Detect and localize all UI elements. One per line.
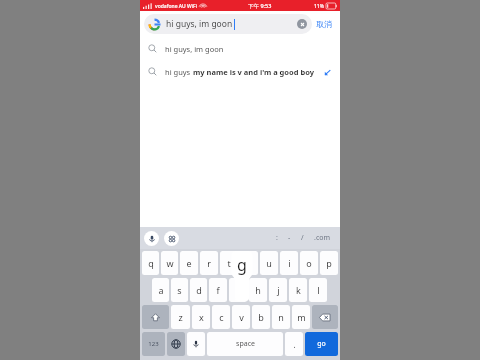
button[interactable]: Shift [142, 305, 169, 329]
button[interactable]: z [171, 305, 190, 329]
button[interactable]: l [309, 278, 327, 302]
staticText: space [236, 339, 255, 349]
staticText: go [317, 339, 326, 349]
staticText: l [317, 284, 320, 296]
button[interactable]: Clear [297, 19, 307, 29]
button[interactable]: w [161, 251, 178, 275]
button[interactable]: : [276, 233, 278, 243]
button[interactable]: x [192, 305, 210, 329]
staticText: . [293, 339, 296, 350]
button[interactable]: - [288, 233, 291, 243]
button[interactable]: . [285, 332, 303, 356]
staticText: r [207, 257, 211, 269]
staticText: i [288, 257, 291, 269]
staticText: c [219, 311, 224, 323]
button[interactable]: hi guys [140, 60, 340, 83]
staticText: 取消 [316, 19, 332, 29]
button[interactable]: 123 [142, 332, 165, 356]
button[interactable]: u [260, 251, 278, 275]
staticText: n [278, 311, 284, 323]
staticText: m [297, 311, 306, 323]
button[interactable]: o [300, 251, 318, 275]
staticText: hi guys, im goon [165, 44, 224, 54]
staticText: 123 [148, 340, 159, 348]
button[interactable]: s [171, 278, 188, 302]
staticText: hi guys, im goon [166, 18, 233, 30]
button[interactable]: Keyboard apps [164, 231, 179, 246]
button[interactable]: space [207, 332, 283, 356]
button[interactable]: y [240, 251, 258, 275]
button[interactable]: r [200, 251, 218, 275]
button[interactable]: d [190, 278, 207, 302]
button[interactable]: b [252, 305, 270, 329]
button[interactable]: n [272, 305, 290, 329]
button[interactable]: j [269, 278, 287, 302]
button[interactable]: t [220, 251, 238, 275]
staticText: f [216, 284, 220, 296]
staticText: my name is v and i'm a good boy [193, 67, 314, 77]
button[interactable]: h [249, 278, 267, 302]
staticText: s [177, 284, 182, 296]
button[interactable]: hi guys, im goon [144, 14, 312, 34]
staticText: o [306, 257, 312, 269]
staticText: k [296, 284, 301, 296]
button[interactable]: Voice typing [187, 332, 205, 356]
button[interactable]: e [180, 251, 198, 275]
button[interactable]: p [320, 251, 338, 275]
button[interactable]: q [142, 251, 159, 275]
button[interactable]: g [229, 278, 247, 302]
staticText: t [227, 257, 231, 269]
staticText: 11% [314, 3, 324, 10]
button[interactable]: Change language [167, 332, 185, 356]
staticText: b [258, 311, 264, 323]
staticText: hi guys [165, 67, 193, 77]
staticText: u [266, 257, 272, 269]
button[interactable]: v [232, 305, 250, 329]
button[interactable]: .com [314, 233, 331, 243]
button[interactable]: / [301, 233, 304, 243]
staticText: .com [314, 233, 331, 243]
button[interactable]: c [212, 305, 230, 329]
button[interactable]: 取消 [312, 14, 336, 34]
button[interactable]: Backspace [312, 305, 338, 329]
staticText: e [186, 257, 192, 269]
staticText: w [166, 257, 174, 269]
staticText: / [301, 233, 304, 243]
staticText: d [196, 284, 202, 296]
staticText: g [237, 254, 247, 276]
button[interactable]: m [292, 305, 310, 329]
staticText: z [178, 311, 183, 323]
staticText: : [276, 233, 278, 243]
staticText: vodafone AU WiFi [155, 3, 198, 10]
button[interactable]: i [280, 251, 298, 275]
button[interactable]: hi guys, im goon [140, 37, 340, 60]
staticText: - [288, 233, 291, 243]
staticText: x [199, 311, 204, 323]
staticText: j [277, 284, 280, 296]
button[interactable]: k [289, 278, 307, 302]
button[interactable]: a [152, 278, 169, 302]
staticText: v [239, 311, 244, 323]
button[interactable]: go [305, 332, 338, 356]
staticText: q [148, 257, 154, 269]
staticText: p [326, 257, 332, 269]
button[interactable]: f [209, 278, 227, 302]
button[interactable]: Voice input [144, 231, 159, 246]
staticText: a [158, 284, 164, 296]
button[interactable]: Insert suggestion [322, 67, 332, 77]
staticText: h [255, 284, 261, 296]
staticText: 下午 9:53 [248, 2, 272, 10]
